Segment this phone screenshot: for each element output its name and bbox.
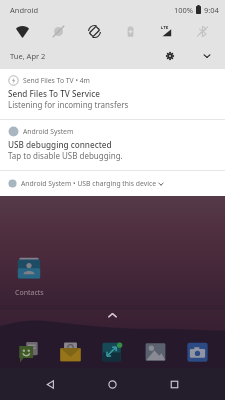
button[interactable]: Wi-Fi: [11, 20, 33, 42]
staticText: Android: [10, 5, 39, 15]
button[interactable]: Collapse: [197, 46, 216, 65]
staticText: 9:04: [204, 5, 219, 15]
staticText: Android System • USB charging this devic…: [21, 179, 156, 188]
button[interactable]: Recents: [163, 373, 185, 395]
button[interactable]: Android System • USB charging this devic…: [0, 171, 225, 196]
staticText: Send Files To TV Service: [8, 88, 100, 99]
button[interactable]: Battery saver: [119, 20, 141, 42]
button[interactable]: Settings: [160, 46, 179, 65]
staticText: Send Files To TV • 4m: [23, 76, 90, 85]
button[interactable]: Mobile data: [155, 20, 177, 42]
button[interactable]: Messages: [15, 339, 41, 365]
button[interactable]: Camera: [184, 339, 210, 365]
button[interactable]: Files: [99, 339, 125, 365]
button[interactable]: Photos: [142, 339, 168, 365]
staticText: 100%: [174, 5, 194, 15]
button[interactable]: Open app drawer: [104, 307, 121, 324]
button[interactable]: Contacts: [6, 256, 52, 298]
staticText: Tue, Apr 2: [10, 51, 46, 61]
button[interactable]: Email: [57, 339, 83, 365]
button[interactable]: Back: [39, 373, 61, 395]
staticText: Listening for incoming transfers: [8, 99, 129, 110]
staticText: USB debugging connected: [8, 139, 112, 150]
staticText: Contacts: [15, 288, 44, 298]
button[interactable]: Bluetooth off: [191, 20, 213, 42]
button[interactable]: Auto rotate: [83, 20, 105, 42]
button[interactable]: Home: [101, 373, 123, 395]
button[interactable]: Android System: [0, 120, 225, 170]
button[interactable]: Do not disturb: [47, 20, 69, 42]
staticText: Android System: [23, 127, 74, 136]
staticText: Tap to disable USB debugging.: [8, 150, 123, 161]
button[interactable]: Send Files To TV • 4m: [0, 69, 225, 119]
